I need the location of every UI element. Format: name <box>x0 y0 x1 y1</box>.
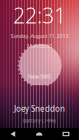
staticText: Sunday, August 11, 2013 <box>10 32 68 39</box>
button[interactable]: Back <box>0 128 26 140</box>
button[interactable]: Home <box>26 128 53 140</box>
staticText: New SMS <box>28 73 51 80</box>
staticText: 22:31 <box>13 1 66 29</box>
staticText: Mon 06:50 <box>27 42 52 49</box>
button[interactable]: Recent apps <box>53 128 79 140</box>
staticText: Battery (74%) <box>23 117 56 124</box>
staticText: Joey Sneddon <box>14 103 65 114</box>
